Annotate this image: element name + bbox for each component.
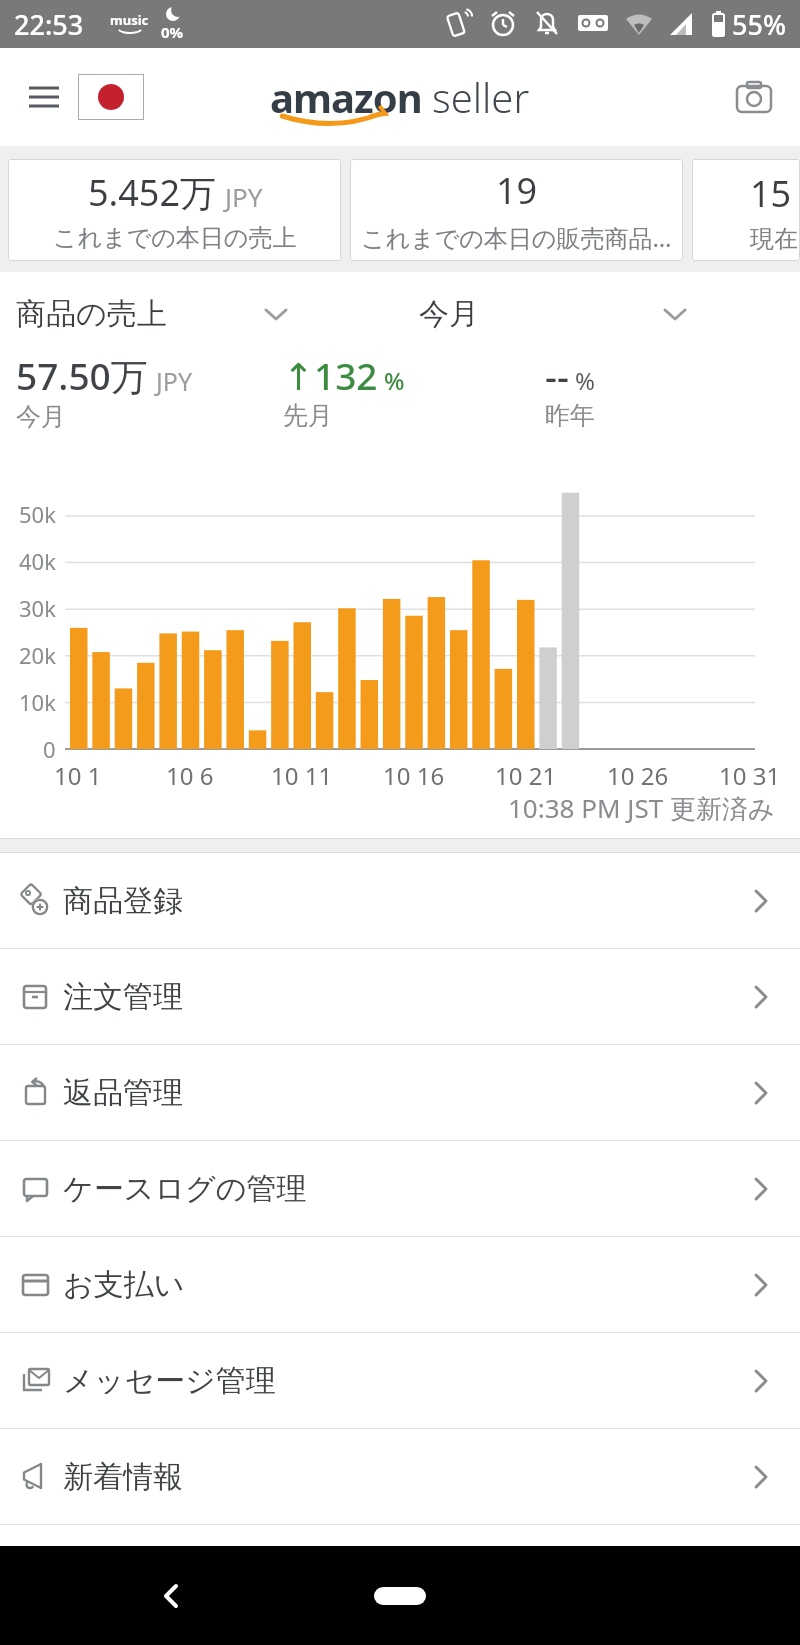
button[interactable]: 返品管理 [0, 1045, 800, 1141]
staticText: amazon [270, 70, 422, 124]
staticText: 10 31 [719, 759, 781, 792]
button[interactable] [150, 1574, 194, 1618]
staticText: 19 [496, 166, 538, 215]
staticText: 先月 [283, 400, 333, 431]
staticText: 10 11 [271, 759, 333, 792]
staticText: 0% [161, 22, 184, 42]
staticText: メッセージ管理 [63, 1362, 276, 1400]
button[interactable]: メッセージ管理 [0, 1333, 800, 1429]
staticText: 55% [732, 6, 786, 43]
button[interactable]: ケースログの管理 [0, 1141, 800, 1237]
button[interactable]: 5.452万 [8, 159, 341, 261]
staticText: 20k [19, 640, 56, 670]
staticText: 57.50万 [16, 350, 148, 401]
staticText: 10 16 [383, 759, 445, 792]
button[interactable] [732, 75, 776, 119]
staticText: 商品登録 [63, 882, 183, 920]
staticText: 注文管理 [63, 978, 183, 1016]
staticText: 10:38 PM JST 更新済み [508, 790, 775, 826]
button[interactable]: amazon [270, 70, 530, 124]
staticText: -- [545, 350, 569, 400]
staticText: 50k [19, 499, 56, 529]
staticText: 15 [750, 169, 792, 218]
button[interactable]: 商品登録 [0, 853, 800, 949]
staticText: 商品の売上 [16, 295, 167, 333]
staticText: JPY [156, 364, 193, 398]
staticText: 新着情報 [63, 1458, 183, 1496]
staticText: % [575, 364, 595, 397]
staticText: 今月 [16, 401, 66, 432]
staticText: お支払い [63, 1266, 185, 1304]
button[interactable]: 新着情報 [0, 1429, 800, 1525]
staticText: % [384, 364, 405, 397]
staticText: 10 21 [495, 759, 557, 792]
button[interactable]: 商品の売上 [16, 295, 289, 333]
staticText: 現在 [750, 224, 798, 254]
staticText: 10 6 [166, 759, 214, 792]
staticText: music [110, 11, 149, 29]
button[interactable]: 15 [692, 159, 800, 261]
staticText: 今月 [419, 295, 479, 333]
staticText: 22:53 [14, 6, 84, 43]
staticText: これまでの本日の販売商品… [361, 221, 672, 254]
staticText: 10k [19, 687, 56, 717]
button[interactable] [78, 74, 144, 120]
staticText: 40k [19, 546, 56, 576]
button[interactable] [22, 75, 66, 119]
button[interactable]: 今月 [419, 295, 784, 333]
staticText: JPY [225, 179, 263, 214]
staticText: 10 26 [607, 759, 669, 792]
staticText: 5.452万 [88, 168, 217, 217]
staticText: これまでの本日の売上 [53, 223, 297, 253]
staticText: 0 [43, 734, 56, 764]
staticText: 返品管理 [63, 1074, 183, 1112]
staticText: seller [432, 70, 530, 124]
staticText: ↑132 [283, 350, 378, 400]
button[interactable]: お支払い [0, 1237, 800, 1333]
staticText: 30k [19, 593, 56, 623]
staticText: 10 1 [54, 759, 102, 792]
staticText: 昨年 [545, 400, 595, 431]
button[interactable]: 19 [350, 159, 683, 261]
button[interactable]: 注文管理 [0, 949, 800, 1045]
button[interactable] [374, 1587, 426, 1605]
staticText: ケースログの管理 [63, 1170, 307, 1208]
